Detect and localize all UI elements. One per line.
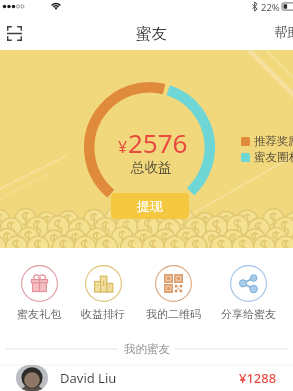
button[interactable]: 收益排行: [77, 265, 129, 321]
staticText: 我的蜜友: [124, 342, 170, 356]
staticText: David Liu: [60, 369, 117, 387]
staticText: 蜜友礼包: [17, 307, 61, 321]
button[interactable]: 我的二维码: [142, 265, 205, 321]
staticText: 2576: [128, 125, 188, 160]
button[interactable]: David Liu: [0, 365, 293, 391]
staticText: 提现: [137, 198, 163, 214]
button[interactable]: Scan: [0, 19, 28, 47]
staticText: 蜜友圈权益: [254, 150, 293, 164]
staticText: ¥1288: [239, 369, 277, 387]
staticText: 分享给蜜友: [221, 307, 276, 321]
staticText: 总收益: [131, 159, 172, 176]
button[interactable]: 帮助: [274, 24, 293, 41]
staticText: ¥: [118, 136, 128, 158]
button[interactable]: 分享给蜜友: [217, 265, 280, 321]
staticText: 22%: [261, 1, 280, 14]
staticText: 蜜友: [136, 24, 167, 44]
button[interactable]: 提现: [111, 193, 189, 219]
button[interactable]: 蜜友礼包: [13, 265, 65, 321]
staticText: 收益排行: [81, 307, 125, 321]
staticText: 推荐奖励: [254, 134, 293, 148]
staticText: 帮助: [274, 24, 293, 41]
staticText: 我的二维码: [146, 307, 201, 321]
